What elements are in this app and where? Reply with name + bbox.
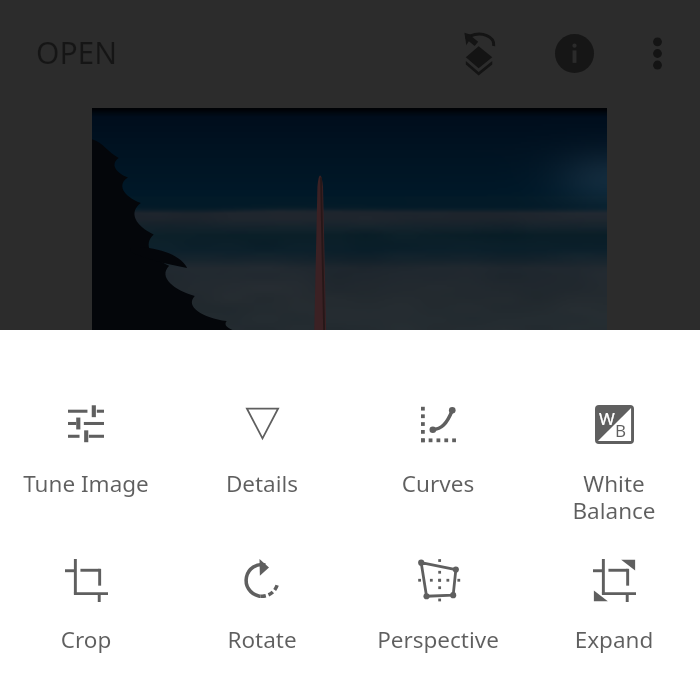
button[interactable] <box>0 384 174 464</box>
button[interactable] <box>174 384 350 464</box>
staticText: Rotate <box>192 624 332 655</box>
staticText: Tune Image <box>16 468 156 499</box>
button[interactable]: W <box>526 384 700 464</box>
staticText: Crop <box>16 624 156 655</box>
button[interactable]: OPEN <box>22 22 132 83</box>
staticText: OPEN <box>36 32 118 73</box>
staticText: White Balance <box>544 468 684 526</box>
staticText: W <box>599 407 615 430</box>
staticText: Details <box>192 468 332 499</box>
staticText: Expand <box>544 624 684 655</box>
button[interactable] <box>526 540 700 620</box>
button[interactable] <box>350 384 526 464</box>
button[interactable] <box>0 540 174 620</box>
staticText: Curves <box>368 468 508 499</box>
button[interactable] <box>174 540 350 620</box>
button[interactable] <box>350 540 526 620</box>
button[interactable]: More options <box>625 21 689 85</box>
button[interactable]: Undo <box>446 21 510 85</box>
button[interactable]: Info <box>542 21 606 85</box>
staticText: B <box>615 419 627 442</box>
staticText: Perspective <box>368 624 508 655</box>
